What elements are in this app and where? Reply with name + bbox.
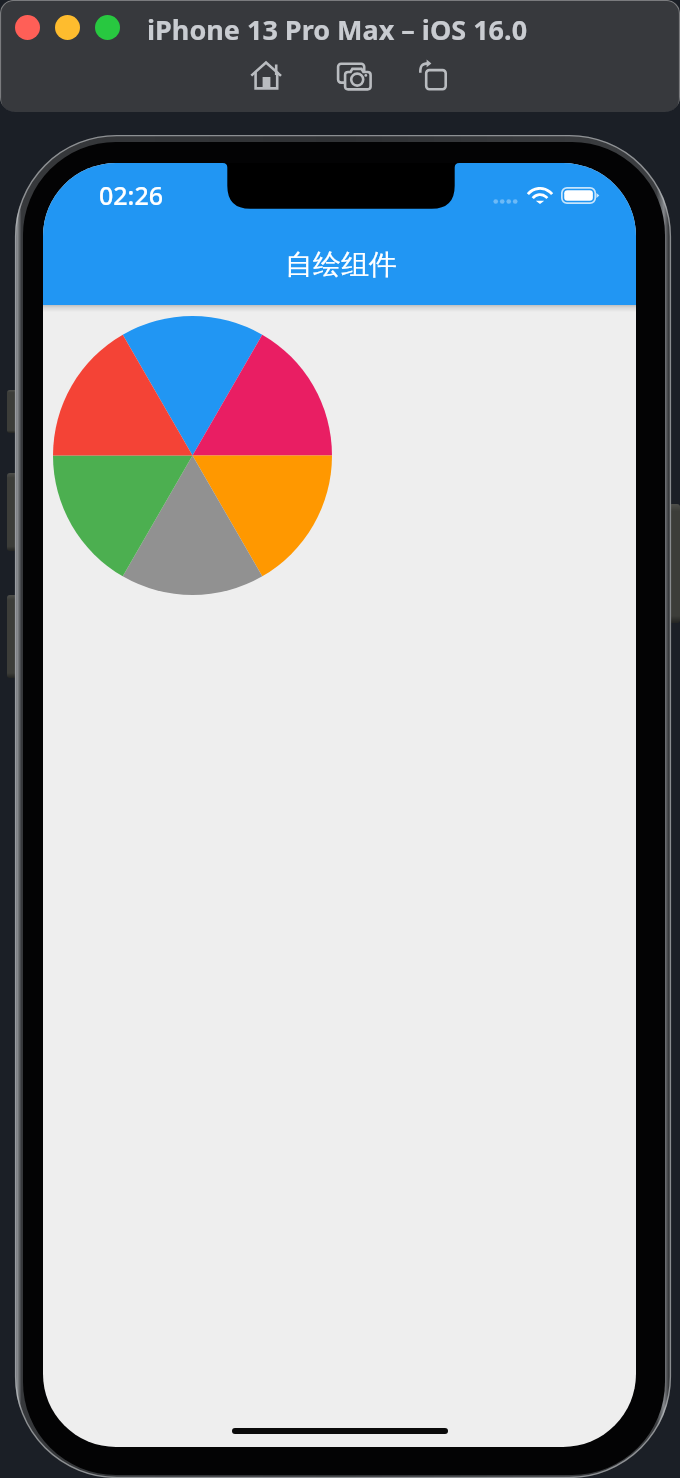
button[interactable]: Maximize window xyxy=(95,15,120,40)
button[interactable]: Screenshot xyxy=(332,54,376,98)
staticText: 自绘组件 xyxy=(285,247,397,282)
button[interactable]: Minimize window xyxy=(55,15,80,40)
button[interactable]: Home xyxy=(244,54,288,98)
staticText: 02:26 xyxy=(99,178,164,212)
button[interactable]: Close window xyxy=(15,15,40,40)
button[interactable]: Rotate xyxy=(411,54,455,98)
staticText: iPhone 13 Pro Max – iOS 16.0 xyxy=(147,11,528,48)
